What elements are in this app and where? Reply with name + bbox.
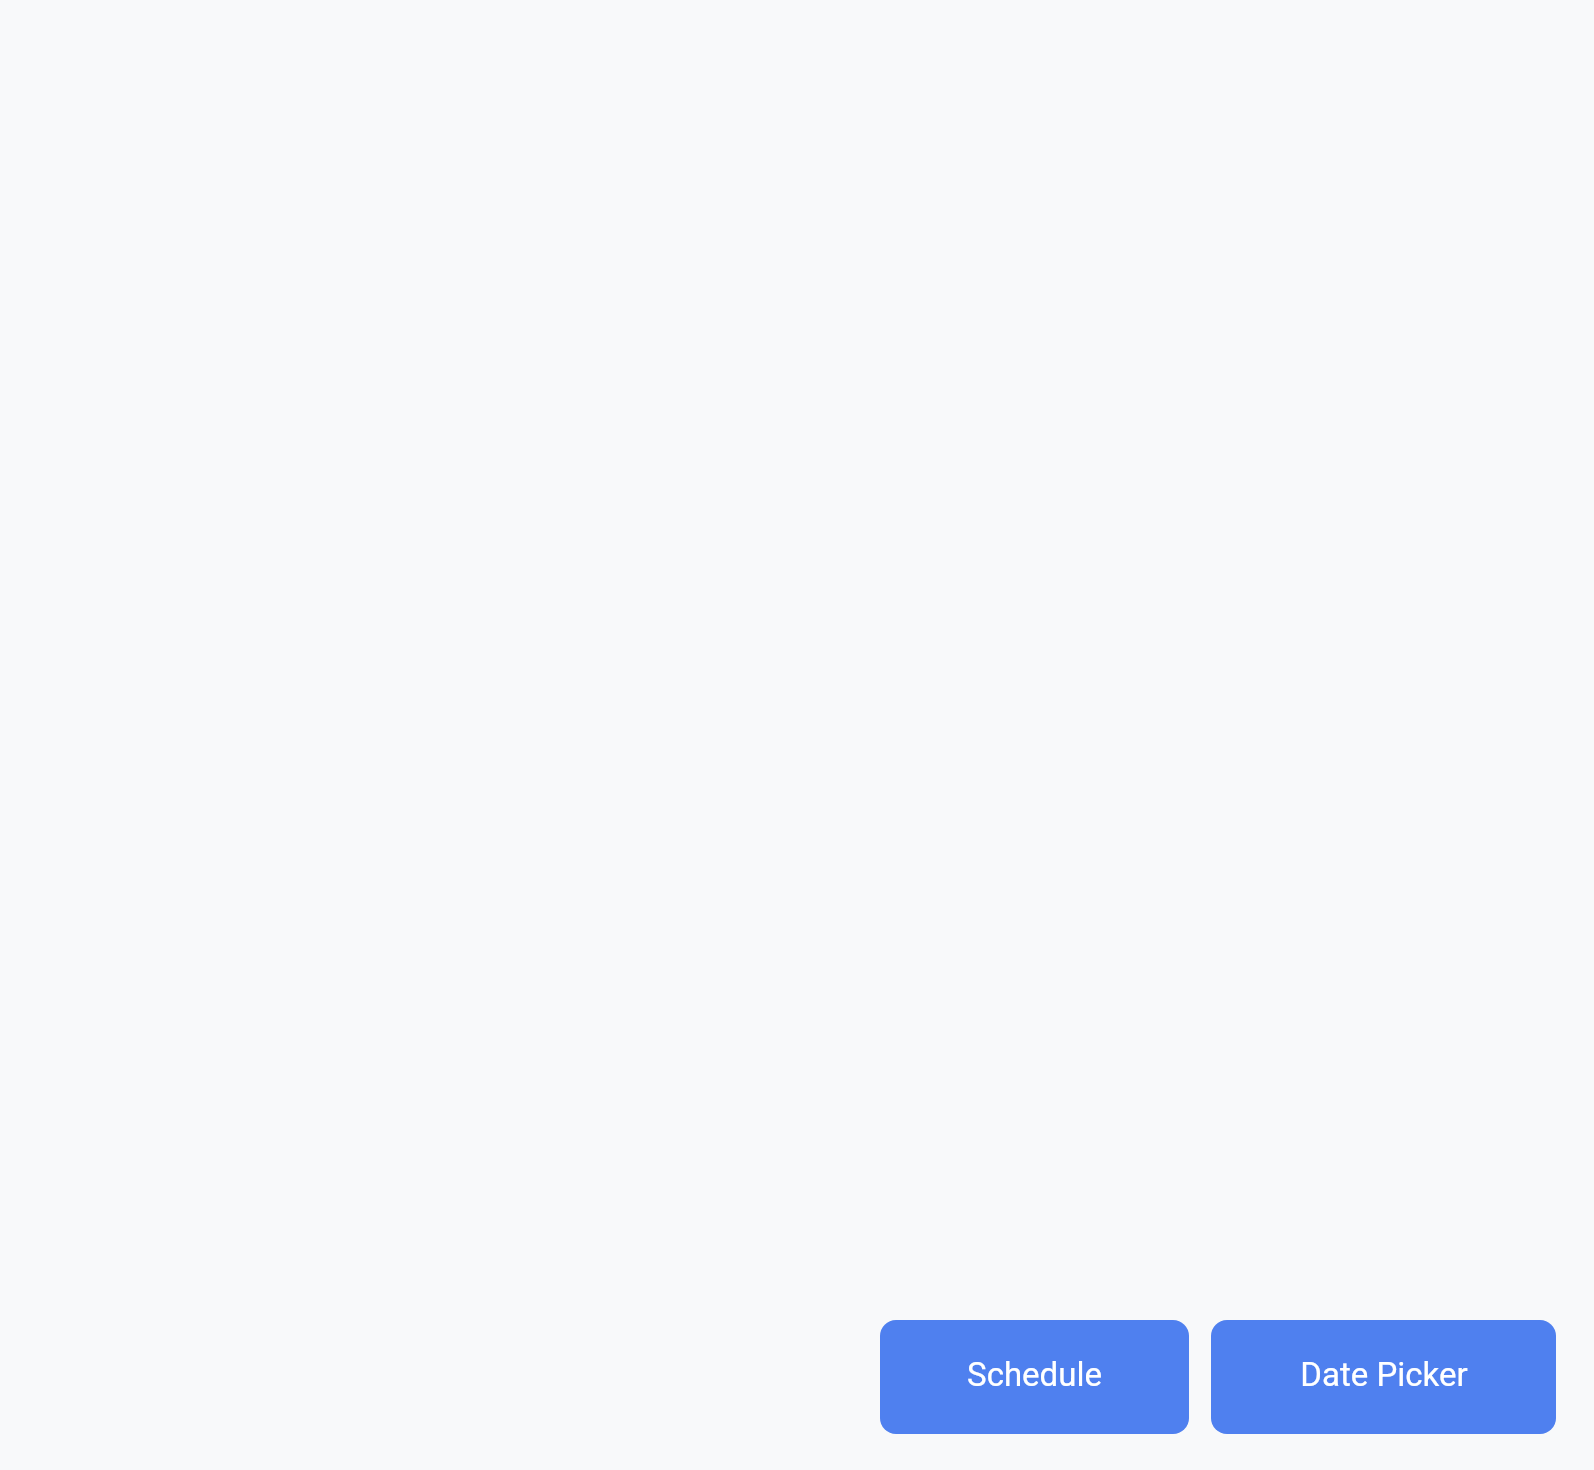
button[interactable]: Date Picker bbox=[1211, 1320, 1556, 1434]
staticText: Date Picker bbox=[1300, 1355, 1468, 1394]
button[interactable]: Schedule bbox=[880, 1320, 1189, 1434]
staticText: Schedule bbox=[967, 1355, 1102, 1394]
